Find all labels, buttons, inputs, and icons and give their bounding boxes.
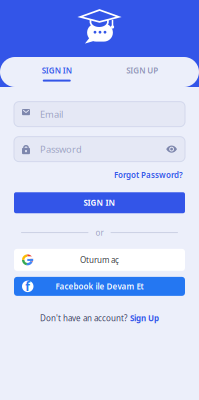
button[interactable]: SIGN UP — [99, 65, 185, 82]
staticText: Facebook ile Devam Et — [55, 281, 143, 292]
staticText: or — [95, 227, 103, 238]
staticText: SIGN UP — [126, 65, 158, 76]
button[interactable]: Oturum aç — [14, 249, 185, 271]
staticText: SIGN IN — [83, 197, 115, 208]
staticText: Oturum aç — [80, 255, 119, 265]
staticText: Forgot Password? — [114, 170, 183, 180]
staticText: Sign Up — [130, 313, 159, 323]
button[interactable]: SIGN IN — [14, 192, 185, 213]
button[interactable]: Don't have an account? — [40, 313, 159, 323]
staticText: SIGN IN — [42, 65, 72, 76]
button[interactable]: Facebook ile Devam Et — [14, 277, 185, 296]
staticText: Password — [40, 143, 82, 155]
button[interactable]: Forgot Password? — [114, 170, 185, 180]
staticText: f — [25, 278, 30, 294]
staticText: Email — [40, 108, 63, 120]
staticText: Don't have an account? — [40, 313, 127, 323]
button[interactable]: SIGN IN — [14, 65, 99, 82]
